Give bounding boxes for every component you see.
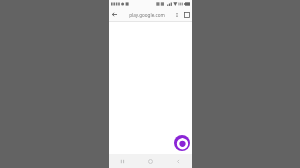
button[interactable]: Assistant bbox=[174, 135, 190, 151]
button[interactable]: Recent apps bbox=[109, 154, 136, 168]
button[interactable]: Switch tabs bbox=[181, 8, 192, 21]
button[interactable]: Home bbox=[136, 154, 164, 168]
button[interactable]: More options bbox=[173, 8, 181, 21]
staticText: play.google.com bbox=[129, 12, 165, 18]
button[interactable]: Back bbox=[109, 8, 120, 21]
button[interactable]: play.google.com bbox=[120, 8, 173, 21]
button[interactable]: Back bbox=[164, 154, 192, 168]
